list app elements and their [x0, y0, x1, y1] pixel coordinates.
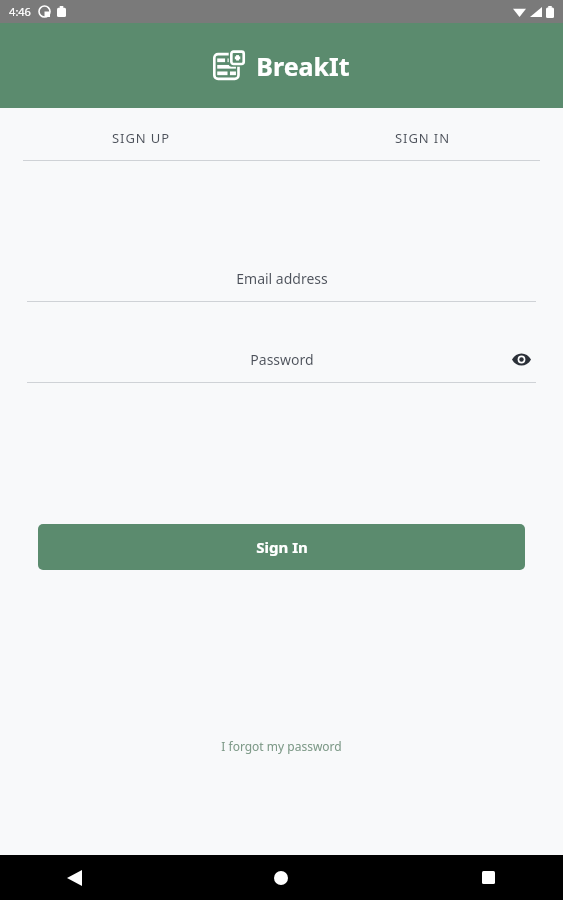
button[interactable]: I forgot my password [209, 732, 354, 760]
staticText: Password [250, 350, 314, 369]
staticText: I forgot my password [221, 738, 342, 754]
button[interactable]: Recent apps [375, 855, 563, 900]
button[interactable]: Password [27, 344, 536, 383]
staticText: BreakIt [256, 49, 350, 83]
button[interactable]: Sign In [38, 524, 525, 570]
button[interactable]: Show password [506, 344, 536, 374]
staticText: SIGN UP [112, 129, 170, 147]
button[interactable]: Email address [27, 263, 536, 302]
button[interactable]: SIGN UP [0, 122, 281, 154]
button[interactable]: SIGN IN [281, 122, 563, 154]
staticText: SIGN IN [395, 129, 450, 147]
staticText: Sign In [256, 537, 308, 557]
button[interactable]: Back [0, 855, 187, 900]
staticText: Email address [236, 269, 328, 288]
button[interactable]: Home [187, 855, 375, 900]
staticText: 4:46 [9, 4, 31, 19]
